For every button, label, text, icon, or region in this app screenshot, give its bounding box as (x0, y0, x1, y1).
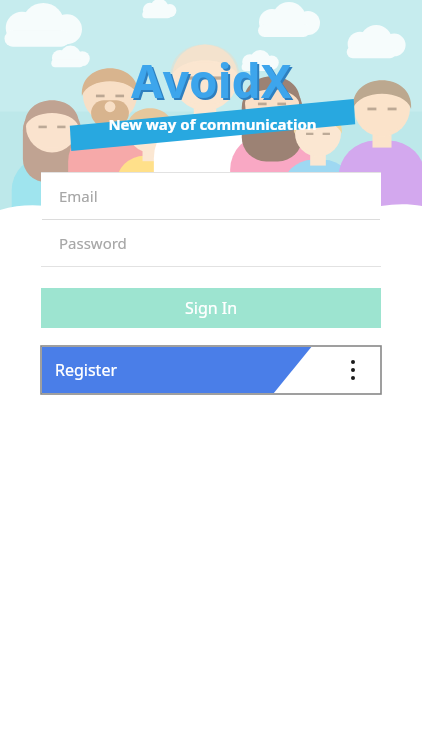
button[interactable]: More options (343, 356, 363, 384)
button[interactable]: Email (41, 173, 381, 219)
staticText: AvoidX (133, 51, 294, 114)
staticText: AvoidX (131, 49, 292, 112)
staticText: Password (59, 233, 127, 253)
button[interactable]: Password (41, 220, 381, 266)
button[interactable]: Sign In (41, 288, 381, 328)
staticText: Email (59, 186, 98, 206)
staticText: Register (55, 359, 118, 381)
button[interactable]: Register (41, 346, 381, 394)
staticText: New way of communication (108, 114, 317, 134)
staticText: Sign In (185, 297, 238, 319)
